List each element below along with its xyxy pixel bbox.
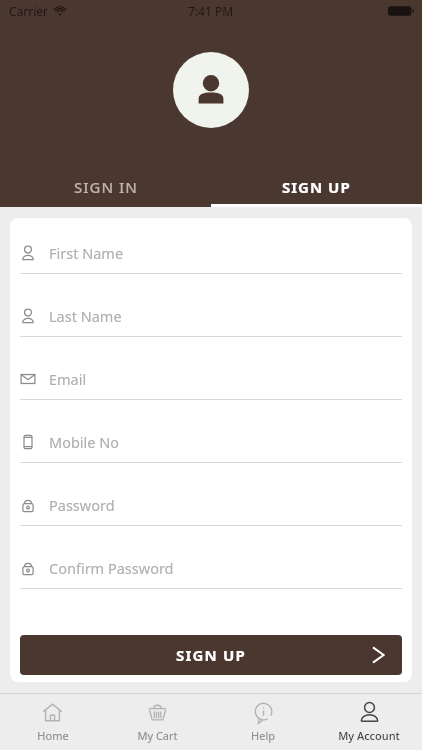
- staticText: SIGN IN: [74, 177, 138, 197]
- staticText: SIGN UP: [176, 645, 247, 665]
- staticText: Home: [37, 728, 69, 743]
- staticText: Confirm Password: [49, 558, 174, 578]
- button[interactable]: My Account: [316, 694, 422, 750]
- button[interactable]: Password: [10, 491, 412, 554]
- button[interactable]: Last Name: [10, 302, 412, 365]
- button[interactable]: Help: [210, 694, 316, 750]
- button[interactable]: My Cart: [105, 694, 210, 750]
- staticText: Email: [49, 369, 87, 389]
- button[interactable]: Home: [0, 694, 105, 750]
- staticText: 7:41 PM: [188, 3, 234, 19]
- button[interactable]: Mobile No: [10, 428, 412, 491]
- button[interactable]: SIGN UP: [20, 635, 402, 675]
- staticText: Password: [49, 495, 115, 515]
- staticText: First Name: [49, 243, 124, 263]
- staticText: Carrier: [9, 3, 49, 19]
- button[interactable]: First Name: [10, 239, 412, 302]
- staticText: Last Name: [49, 306, 122, 326]
- staticText: Help: [251, 728, 275, 743]
- staticText: My Cart: [137, 728, 178, 743]
- button[interactable]: SIGN IN: [0, 167, 211, 207]
- staticText: My Account: [338, 728, 400, 743]
- staticText: SIGN UP: [282, 177, 351, 197]
- button[interactable]: Confirm Password: [10, 554, 412, 617]
- staticText: Mobile No: [49, 432, 120, 452]
- button[interactable]: Email: [10, 365, 412, 428]
- button[interactable]: SIGN UP: [211, 167, 422, 207]
